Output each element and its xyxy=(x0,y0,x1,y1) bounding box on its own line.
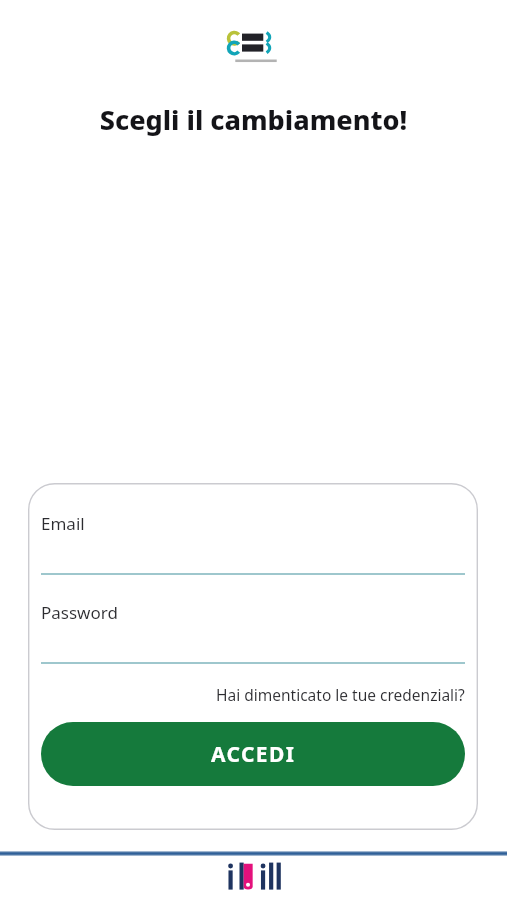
staticText: Email xyxy=(41,512,85,535)
staticText: Password xyxy=(41,601,118,624)
staticText: Hai dimenticato le tue credenziali? xyxy=(216,684,465,705)
staticText: Scegli il cambiamento! xyxy=(0,101,507,138)
other: ibill logo xyxy=(225,862,283,892)
button[interactable]: Password xyxy=(41,601,465,664)
other: Tres Gas & Power logo xyxy=(228,30,284,66)
staticText: ACCEDI xyxy=(211,740,296,769)
button[interactable]: ACCEDI xyxy=(41,722,465,786)
button[interactable]: Hai dimenticato le tue credenziali? xyxy=(41,678,465,710)
button[interactable]: Email xyxy=(41,512,465,575)
